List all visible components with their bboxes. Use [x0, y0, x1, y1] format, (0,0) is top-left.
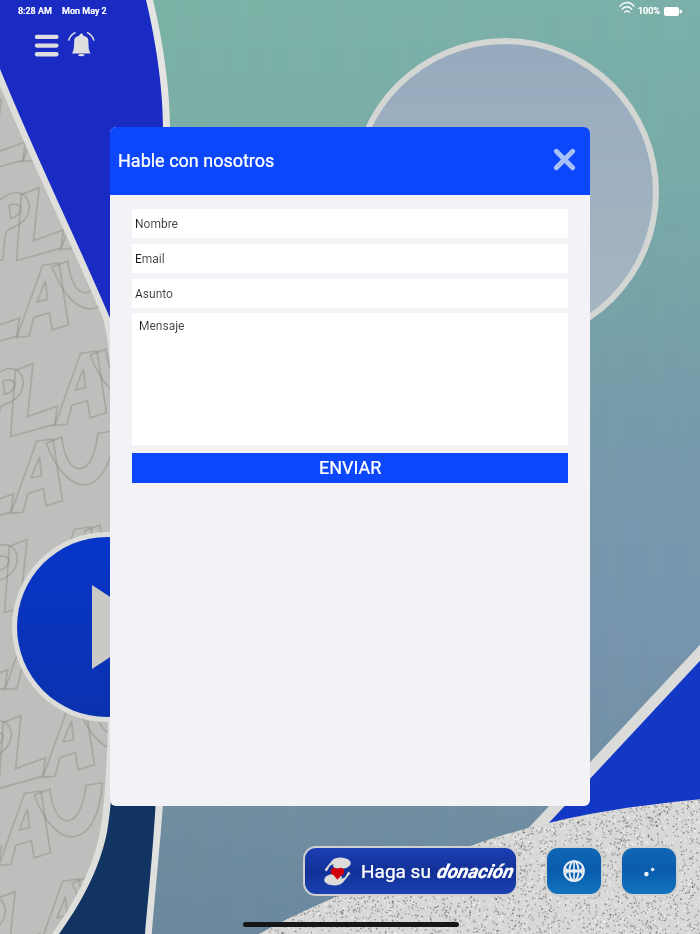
button[interactable]: Notifications: [67, 28, 97, 58]
button[interactable]: Menu: [28, 28, 65, 65]
button[interactable]: Haga su: [305, 848, 516, 894]
staticText: Mensaje: [139, 319, 185, 333]
button[interactable]: Close: [542, 137, 586, 181]
button[interactable]: Language: [547, 848, 601, 894]
button[interactable]: Mensaje: [132, 313, 568, 445]
staticText: Nombre: [135, 217, 178, 231]
button[interactable]: Email: [132, 244, 568, 273]
button[interactable]: Nombre: [132, 209, 568, 238]
staticText: 100%: [638, 6, 660, 17]
staticText: Asunto: [135, 287, 173, 301]
staticText: Email: [135, 252, 165, 266]
button[interactable]: Asunto: [132, 279, 568, 308]
staticText: ENVIAR: [319, 457, 382, 478]
staticText: Hable con nosotros: [118, 150, 275, 171]
staticText: Mon May 2: [62, 6, 107, 17]
staticText: Haga su: [361, 860, 436, 882]
staticText: donación: [436, 860, 513, 882]
button[interactable]: ENVIAR: [132, 453, 568, 483]
staticText: 8:28 AM: [18, 6, 52, 17]
button[interactable]: Accessibility: [622, 848, 676, 894]
